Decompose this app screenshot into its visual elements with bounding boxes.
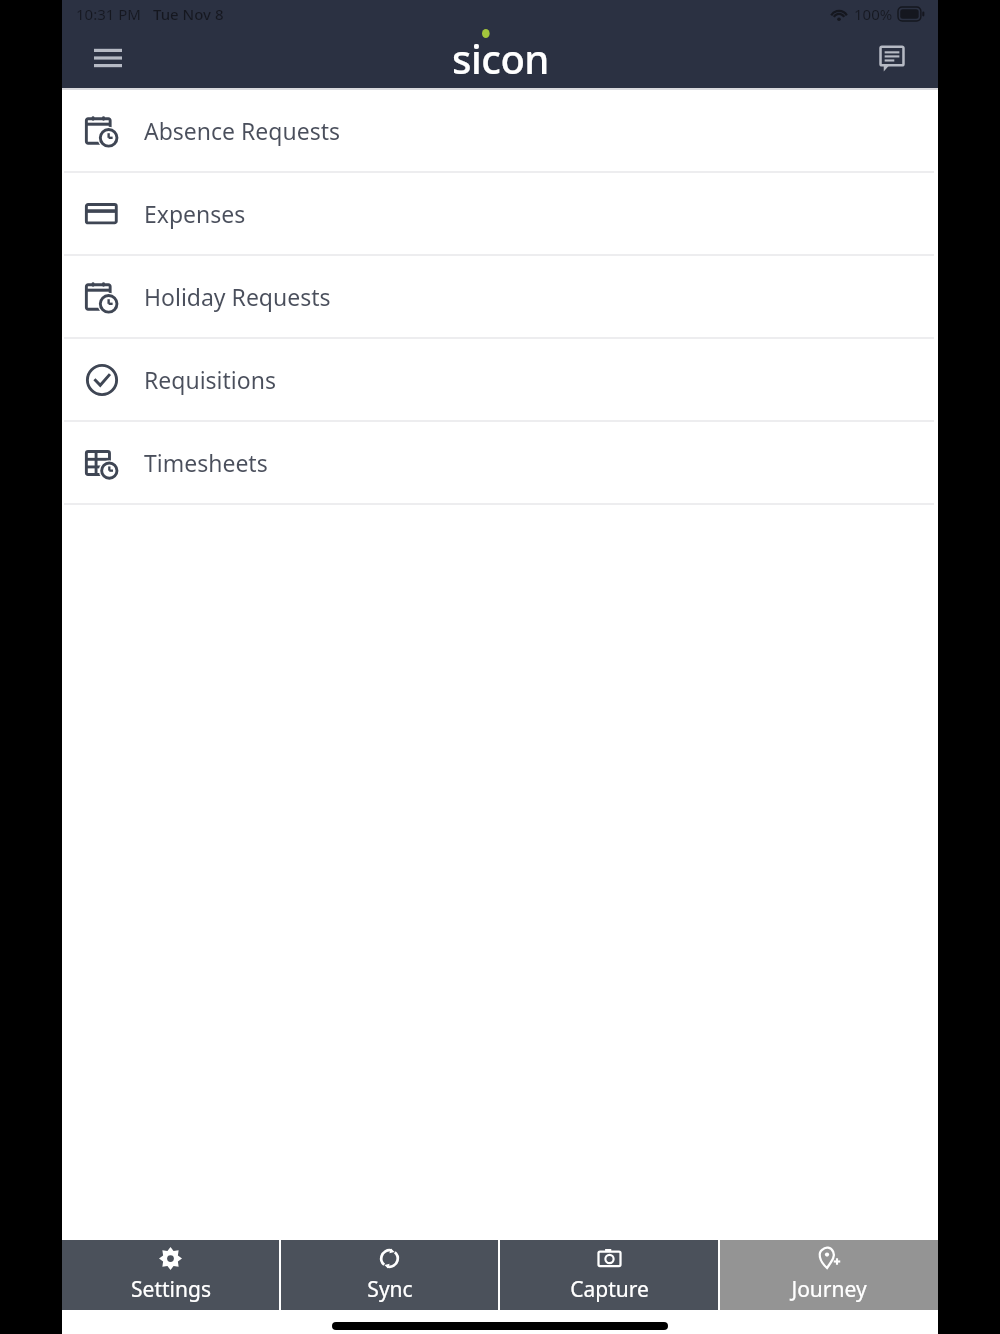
staticText: Sync [367,1275,413,1304]
staticText: Tue Nov 8 [153,4,224,24]
staticText: Journey [791,1275,867,1304]
button[interactable]: Journey [720,1240,938,1310]
staticText: Settings [131,1275,211,1304]
button[interactable]: Holiday Requests [62,256,938,337]
staticText: Expenses [144,198,246,229]
button[interactable]: Expenses [62,173,938,254]
button[interactable]: Absence Requests [62,90,938,171]
button[interactable]: Settings [62,1240,279,1310]
staticText: 100% [854,4,893,24]
staticText: 10:31 PM [76,4,141,24]
staticText: Holiday Requests [144,281,331,312]
button[interactable]: Capture [500,1240,718,1310]
staticText: sicon [452,31,549,85]
staticText: Capture [570,1275,649,1304]
staticText: Absence Requests [144,115,340,146]
button[interactable]: Messages [868,34,916,82]
button[interactable]: Sync [281,1240,498,1310]
button[interactable]: Requisitions [62,339,938,420]
button[interactable]: Menu [84,34,132,82]
staticText: Timesheets [144,447,268,478]
button[interactable]: Timesheets [62,422,938,503]
staticText: Requisitions [144,364,276,395]
